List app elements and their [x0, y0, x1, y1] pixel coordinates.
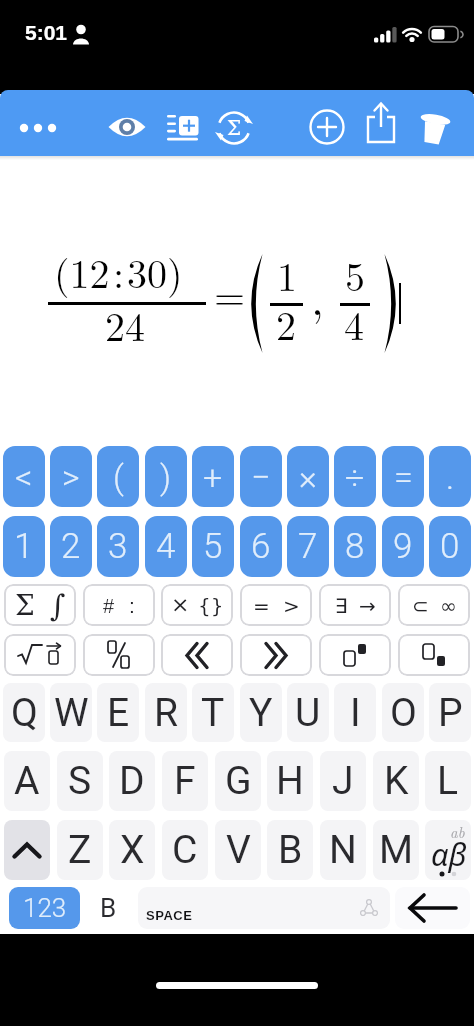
button[interactable]: X: [109, 820, 155, 880]
button[interactable]: B: [85, 887, 131, 929]
staticText: .: [446, 457, 455, 497]
button[interactable]: [414, 108, 454, 148]
button[interactable]: [107, 108, 147, 148]
staticText: V: [226, 827, 251, 873]
button[interactable]: T: [192, 683, 234, 742]
button[interactable]: [214, 108, 254, 148]
button[interactable]: F: [162, 751, 208, 811]
button[interactable]: C: [162, 820, 208, 880]
button[interactable]: J: [320, 751, 366, 811]
button[interactable]: ÷: [334, 446, 376, 507]
button[interactable]: [4, 634, 76, 676]
button[interactable]: H: [267, 751, 313, 811]
button[interactable]: [4, 820, 50, 880]
button[interactable]: ): [145, 446, 187, 507]
staticText: :: [129, 594, 135, 617]
button[interactable]: [307, 108, 347, 148]
staticText: >: [62, 457, 80, 497]
staticText: =: [214, 265, 246, 322]
button[interactable]: Σ: [4, 584, 76, 626]
button[interactable]: A: [4, 751, 50, 811]
button[interactable]: [361, 108, 401, 148]
staticText: R: [154, 690, 179, 736]
staticText: 9: [393, 526, 413, 567]
staticText: 8: [345, 526, 365, 567]
button[interactable]: I: [334, 683, 376, 742]
staticText: B: [278, 827, 303, 873]
button[interactable]: ×: [161, 584, 233, 626]
button[interactable]: 6: [240, 516, 282, 577]
button[interactable]: [161, 634, 233, 676]
button[interactable]: <: [3, 446, 45, 507]
staticText: A: [14, 758, 40, 804]
button[interactable]: [18, 108, 58, 148]
button[interactable]: L: [425, 751, 471, 811]
staticText: ×: [171, 592, 190, 618]
button[interactable]: 7: [287, 516, 329, 577]
button[interactable]: B: [267, 820, 313, 880]
button[interactable]: .: [429, 446, 471, 507]
staticText: 3: [108, 526, 128, 567]
staticText: 2: [276, 295, 296, 352]
button[interactable]: V: [215, 820, 261, 880]
button[interactable]: 5: [192, 516, 234, 577]
button[interactable]: 3: [97, 516, 139, 577]
staticText: 5: [203, 526, 223, 567]
button[interactable]: O: [382, 683, 424, 742]
button[interactable]: (: [97, 446, 139, 507]
button[interactable]: M: [373, 820, 419, 880]
button[interactable]: [83, 634, 155, 676]
button[interactable]: >: [50, 446, 92, 507]
button[interactable]: G: [215, 751, 261, 811]
button[interactable]: 4: [145, 516, 187, 577]
button[interactable]: Y: [240, 683, 282, 742]
staticText: ∫: [50, 588, 66, 623]
button[interactable]: K: [373, 751, 419, 811]
button[interactable]: ⊂: [398, 584, 470, 626]
button[interactable]: D: [109, 751, 155, 811]
button[interactable]: P: [429, 683, 471, 742]
button[interactable]: [398, 634, 470, 676]
button[interactable]: N: [320, 820, 366, 880]
button[interactable]: =: [240, 584, 312, 626]
button[interactable]: W: [50, 683, 92, 742]
button[interactable]: +: [192, 446, 234, 507]
staticText: ): [160, 457, 172, 497]
staticText: X: [120, 827, 145, 873]
button[interactable]: ×: [287, 446, 329, 507]
staticText: T: [201, 690, 225, 736]
button[interactable]: Q: [3, 683, 45, 742]
button[interactable]: Z: [57, 820, 103, 880]
staticText: −: [251, 457, 271, 497]
button[interactable]: U: [287, 683, 329, 742]
staticText: →: [359, 594, 376, 617]
button[interactable]: #: [83, 584, 155, 626]
button[interactable]: E: [97, 683, 139, 742]
button[interactable]: 123: [9, 887, 80, 929]
button[interactable]: [319, 634, 391, 676]
button[interactable]: 1: [3, 516, 45, 577]
button[interactable]: 8: [334, 516, 376, 577]
staticText: =: [394, 457, 413, 497]
staticText: Y: [249, 690, 273, 736]
button[interactable]: −: [240, 446, 282, 507]
staticText: 2: [61, 526, 81, 567]
button[interactable]: 0: [429, 516, 471, 577]
staticText: Z: [68, 827, 92, 873]
button[interactable]: S: [57, 751, 103, 811]
button[interactable]: 9: [382, 516, 424, 577]
staticText: ,: [311, 263, 324, 328]
button[interactable]: =: [382, 446, 424, 507]
button[interactable]: SPACE: [138, 887, 390, 929]
staticText: F: [174, 758, 196, 804]
button[interactable]: [395, 887, 470, 929]
button[interactable]: [163, 108, 203, 148]
button[interactable]: [240, 634, 312, 676]
button[interactable]: 2: [50, 516, 92, 577]
button[interactable]: R: [145, 683, 187, 742]
staticText: +: [203, 457, 223, 497]
staticText: G: [225, 758, 252, 804]
button[interactable]: ab: [425, 820, 471, 880]
staticText: 1: [14, 526, 34, 567]
button[interactable]: ∃: [319, 584, 391, 626]
